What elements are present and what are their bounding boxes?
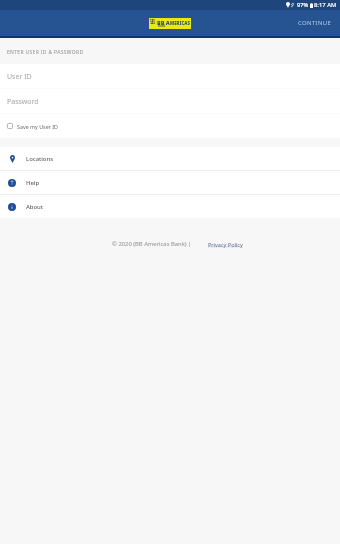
button[interactable]: User ID [0, 64, 340, 88]
button[interactable]: About [0, 195, 340, 218]
button[interactable]: Password [0, 89, 340, 113]
staticText: CONTINUE [298, 19, 332, 27]
staticText: About [26, 203, 44, 211]
staticText: © 2020 (BB Americas Bank) | [112, 240, 192, 248]
staticText: MERICAS [170, 20, 191, 26]
staticText: Locations [26, 155, 54, 163]
button[interactable]: Locations [0, 147, 340, 170]
staticText: ENTER USER ID & PASSWORD [7, 49, 84, 56]
staticText: 97% [297, 1, 309, 9]
staticText: 8:17 AM [314, 1, 337, 9]
staticText: Help [26, 179, 40, 187]
button[interactable]: Help [0, 171, 340, 194]
staticText: Save my User ID [17, 123, 58, 130]
staticText: User ID [7, 72, 32, 82]
button[interactable]: CONTINUE [288, 13, 340, 33]
staticText: BB A [157, 19, 170, 26]
button[interactable]: Save my User ID [0, 114, 340, 138]
staticText: Bank [158, 24, 166, 28]
staticText: Password [7, 97, 39, 107]
button[interactable]: Privacy Policy [208, 241, 243, 248]
